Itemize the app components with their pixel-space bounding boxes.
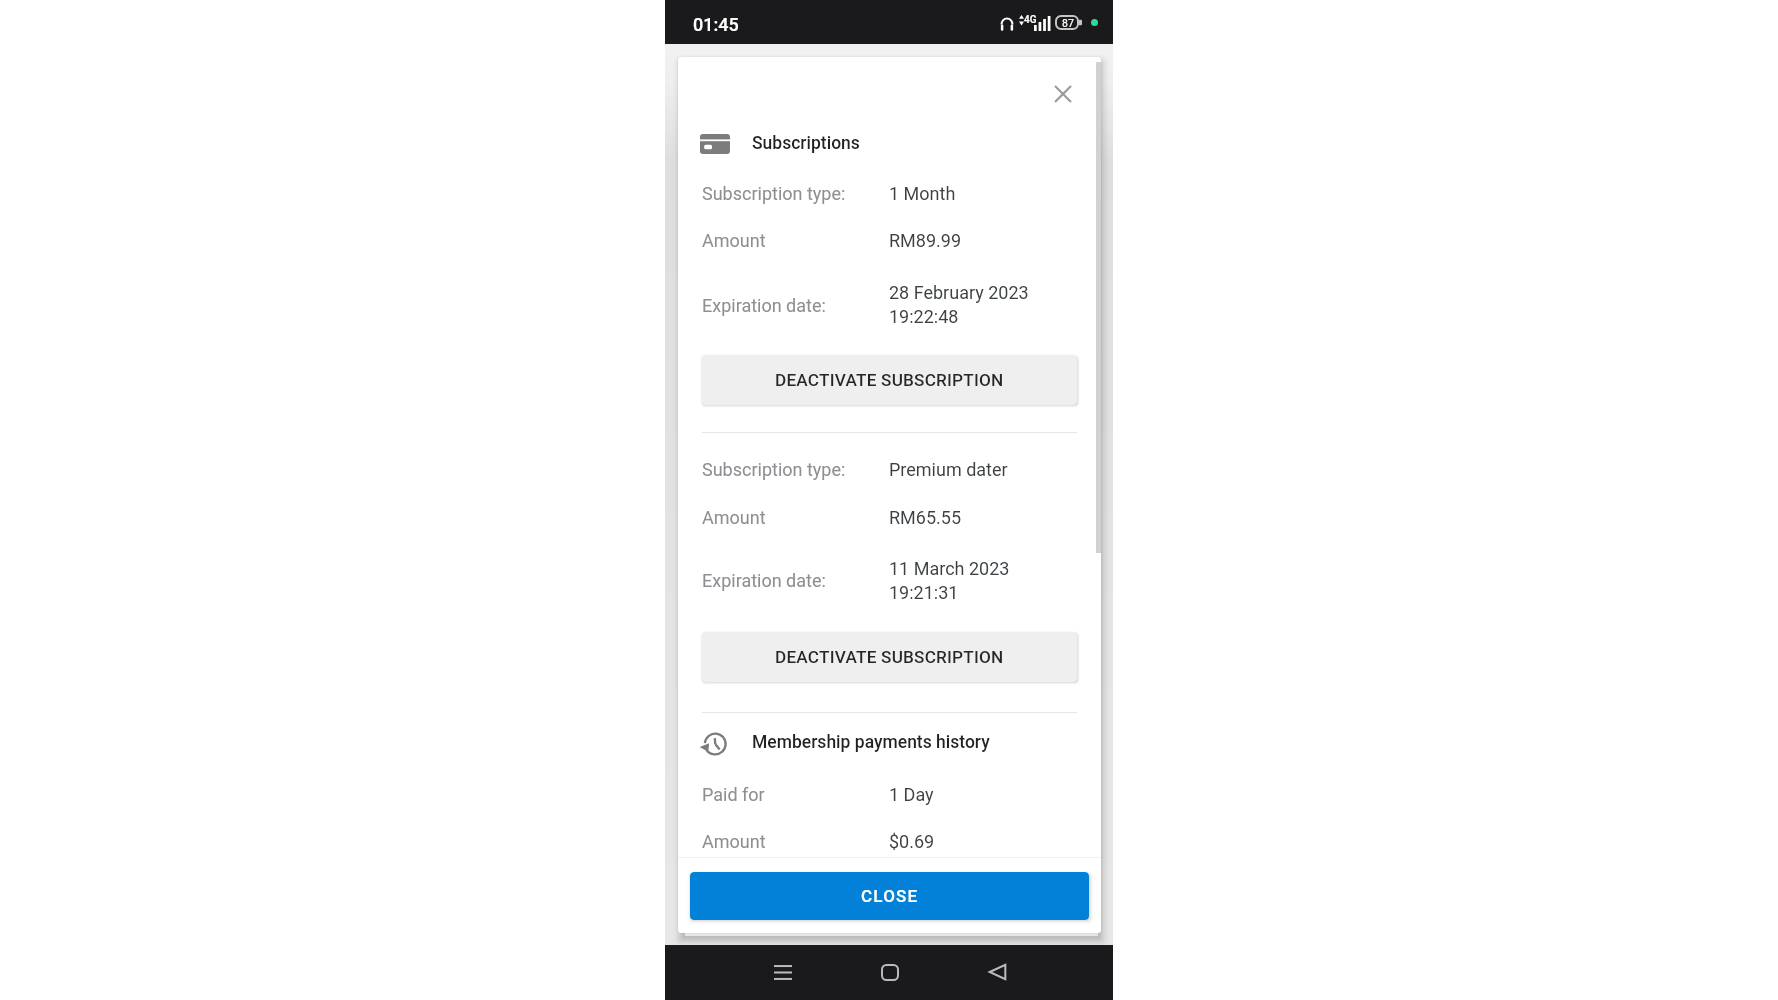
staticText: 4G — [1024, 14, 1037, 26]
staticText: Premium dater — [889, 459, 1008, 480]
staticText: DEACTIVATE SUBSCRIPTION — [775, 370, 1004, 390]
staticText: Expiration date: — [702, 570, 826, 591]
staticText: Paid for — [702, 784, 765, 805]
staticText: Expiration date: — [702, 295, 826, 316]
staticText: Amount — [702, 831, 766, 852]
staticText: Amount — [702, 507, 766, 528]
button[interactable]: Recent apps — [761, 950, 805, 994]
staticText: Membership payments history — [752, 732, 990, 753]
staticText: 87 — [1062, 17, 1074, 29]
staticText: Amount — [702, 230, 766, 251]
staticText: 19:22:48 — [889, 306, 959, 327]
staticText: $0.69 — [889, 831, 935, 852]
staticText: 1 Month — [889, 183, 956, 204]
staticText: DEACTIVATE SUBSCRIPTION — [775, 647, 1004, 667]
staticText: RM65.55 — [889, 507, 962, 528]
button[interactable]: Home — [868, 950, 912, 994]
button[interactable]: DEACTIVATE SUBSCRIPTION — [702, 632, 1077, 682]
staticText: 11 March 2023 — [889, 558, 1010, 579]
button[interactable]: DEACTIVATE SUBSCRIPTION — [702, 355, 1077, 405]
staticText: Subscription type: — [702, 183, 846, 204]
button[interactable]: CLOSE — [690, 872, 1089, 920]
staticText: 28 February 2023 — [889, 282, 1029, 303]
staticText: Subscription type: — [702, 459, 846, 480]
staticText: CLOSE — [861, 886, 919, 906]
staticText: 1 Day — [889, 784, 934, 805]
staticText: 19:21:31 — [889, 582, 959, 603]
staticText: RM89.99 — [889, 230, 962, 251]
button[interactable]: Close — [1043, 74, 1083, 114]
staticText: 01:45 — [693, 14, 739, 35]
staticText: Subscriptions — [752, 133, 860, 154]
button[interactable]: Back — [975, 950, 1019, 994]
